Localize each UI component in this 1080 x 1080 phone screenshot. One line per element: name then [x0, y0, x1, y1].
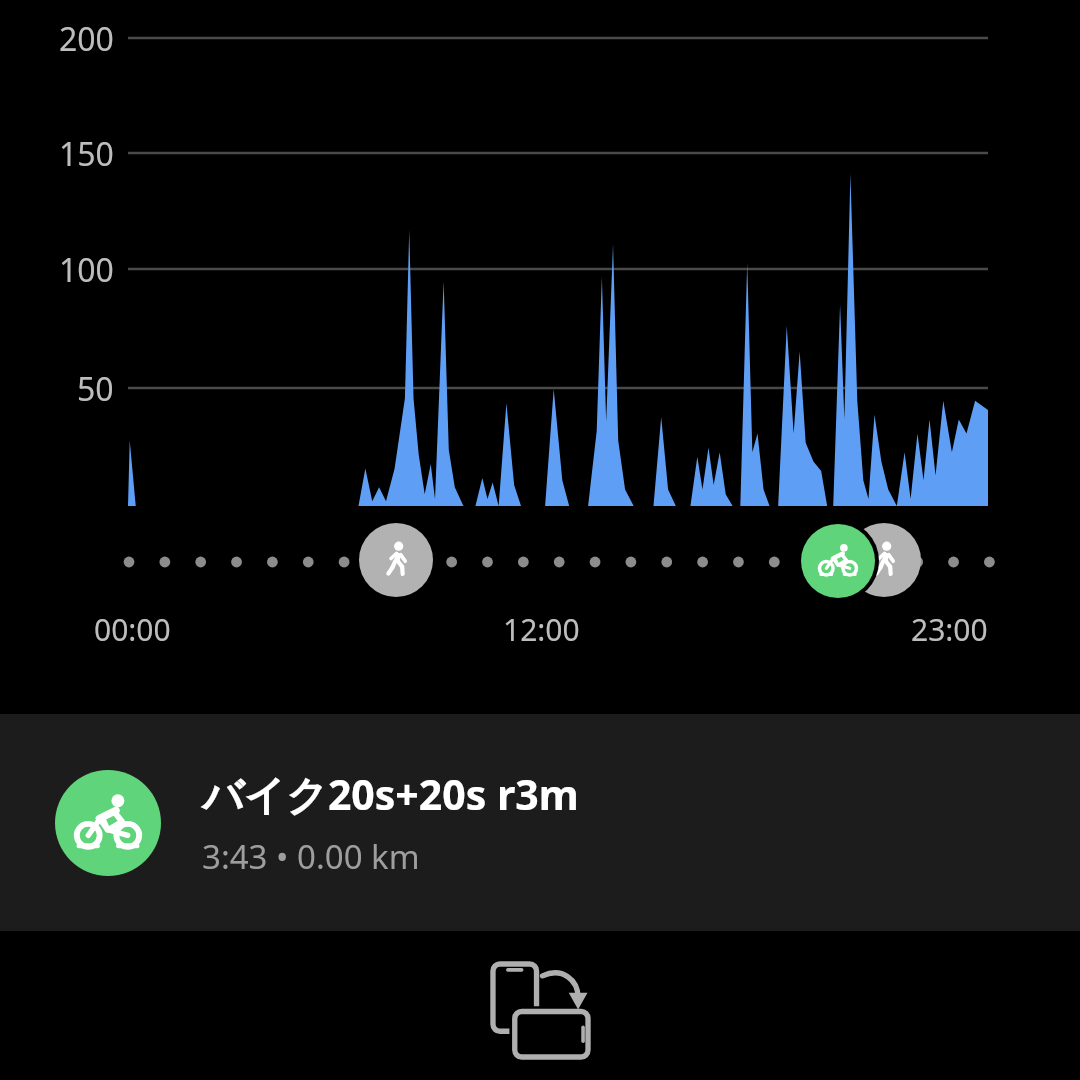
staticText: 200 [59, 17, 114, 61]
button[interactable]: Rotate screen [475, 944, 605, 1074]
staticText: 12:00 [503, 609, 580, 650]
staticText: 100 [59, 248, 114, 292]
staticText: 23:00 [911, 609, 988, 650]
staticText: バイク20s+20s r3m [202, 766, 579, 822]
staticText: 00:00 [94, 609, 171, 650]
staticText: 3:43 • 0.00 km [202, 834, 420, 879]
staticText: 50 [77, 367, 114, 411]
button[interactable]: バイク20s+20s r3m [0, 714, 1080, 931]
staticText: 150 [59, 132, 114, 176]
